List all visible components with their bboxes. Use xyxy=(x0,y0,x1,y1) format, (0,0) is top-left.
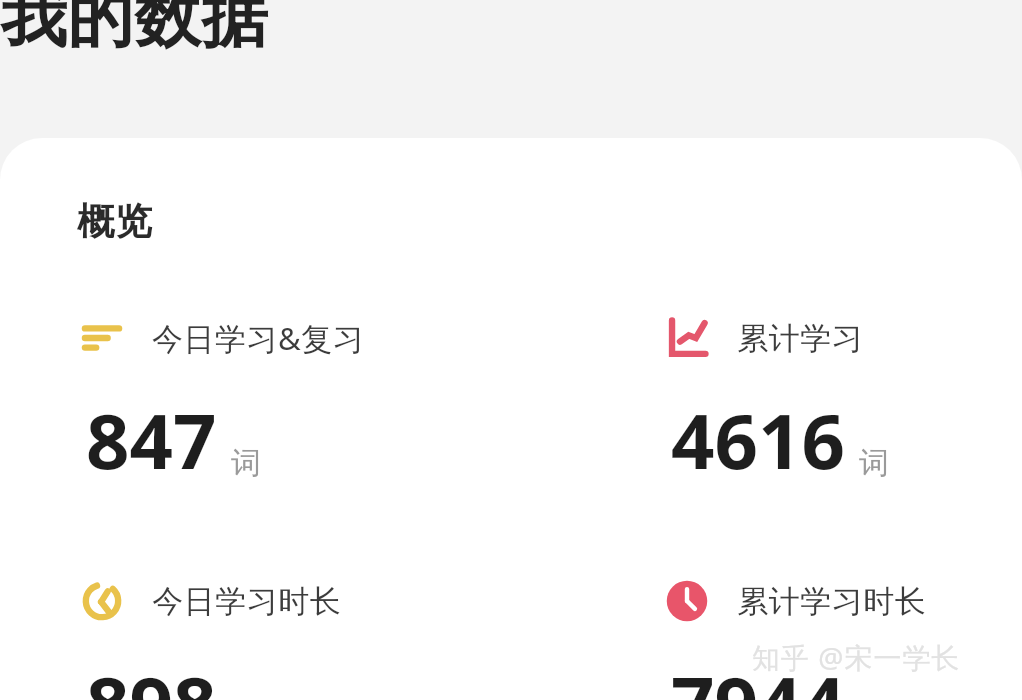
staticText: 词 xyxy=(859,444,889,482)
staticText: 累计学习 xyxy=(737,319,863,358)
button[interactable]: 今日学习&复习 xyxy=(74,310,404,492)
staticText: 累计学习时长 xyxy=(737,582,926,621)
staticText: 知乎 @宋一学长 xyxy=(752,638,961,676)
other: 累计学习时长 xyxy=(659,573,715,629)
staticText: 我的数据 xyxy=(0,0,268,59)
other: 今日学习&复习 xyxy=(74,310,130,366)
staticText: 4616 xyxy=(671,388,845,492)
staticText: 898 xyxy=(86,651,217,700)
staticText: 概览 xyxy=(77,198,152,245)
button[interactable]: 累计学习 xyxy=(659,310,989,492)
staticText: 7944 xyxy=(671,651,845,700)
other: 今日学习时长 xyxy=(74,573,130,629)
staticText: 今日学习时长 xyxy=(152,582,341,621)
button[interactable]: 今日学习时长 xyxy=(74,573,404,700)
staticText: 今日学习&复习 xyxy=(152,317,365,359)
staticText: 词 xyxy=(231,444,261,482)
staticText: 847 xyxy=(86,388,217,492)
button[interactable]: 累计学习时长 xyxy=(659,573,989,700)
other: 累计学习 xyxy=(659,310,715,366)
